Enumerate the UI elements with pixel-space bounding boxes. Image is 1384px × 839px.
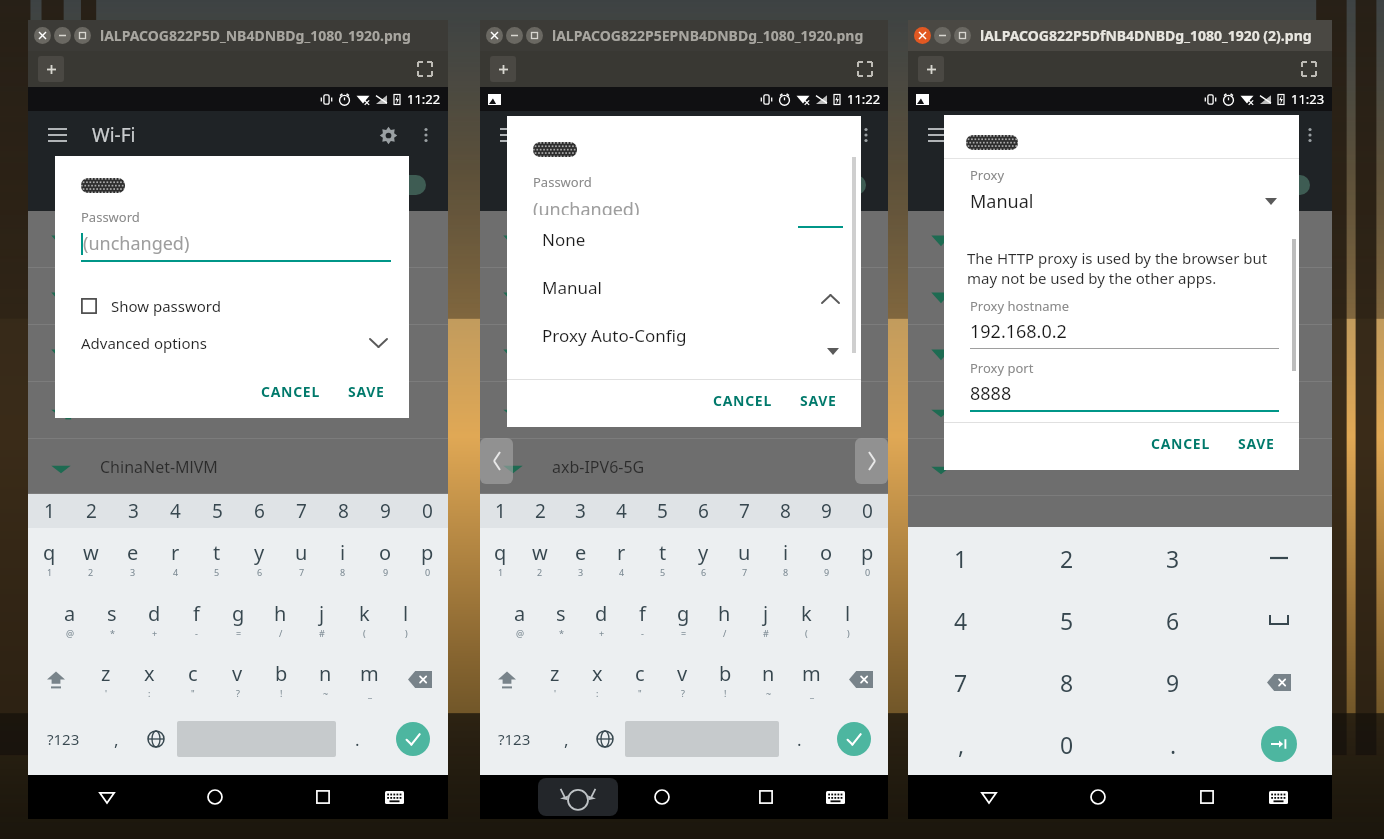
button[interactable]: 5 — [1014, 589, 1120, 651]
button[interactable]: Next — [855, 438, 888, 484]
button[interactable]: 2 — [1014, 527, 1120, 589]
button[interactable]: 1 — [28, 494, 70, 528]
button[interactable]: c — [618, 649, 661, 709]
button[interactable]: n — [303, 649, 347, 709]
button[interactable]: c — [171, 649, 215, 709]
button[interactable]: Keyboard — [377, 780, 411, 814]
button[interactable]: Advanced options — [55, 329, 409, 357]
button[interactable]: 8 — [1014, 651, 1120, 713]
button[interactable]: 1 — [480, 494, 520, 528]
button[interactable]: y — [238, 528, 280, 589]
button[interactable]: 3 — [560, 494, 601, 528]
button[interactable]: Recents — [1190, 780, 1224, 814]
button[interactable]: Rotate screen — [538, 778, 618, 816]
button[interactable] — [1226, 589, 1332, 651]
button[interactable]: z — [84, 649, 127, 709]
button[interactable]: SAVE — [790, 384, 847, 417]
button[interactable]: 6 — [238, 494, 280, 528]
button[interactable]: d — [581, 589, 622, 649]
button[interactable]: s — [540, 589, 581, 649]
button[interactable]: Recents — [749, 780, 783, 814]
button[interactable]: m — [347, 649, 391, 709]
button[interactable]: Manual — [944, 189, 1299, 214]
button[interactable]: k — [786, 589, 827, 649]
button[interactable]: Maximize — [954, 27, 971, 44]
button[interactable]: Home — [645, 780, 679, 814]
button[interactable]: 8 — [322, 494, 364, 528]
button[interactable]: t — [196, 528, 238, 589]
button[interactable] — [392, 175, 426, 195]
button[interactable]: 4 — [601, 494, 642, 528]
button[interactable]: Previous — [480, 438, 513, 484]
button[interactable]: Show password — [55, 292, 409, 320]
button[interactable]: v — [661, 649, 704, 709]
button[interactable]: q — [28, 528, 70, 589]
button[interactable]: o — [806, 528, 847, 589]
button[interactable]: t — [642, 528, 683, 589]
button[interactable] — [28, 211, 448, 268]
button[interactable]: r — [154, 528, 196, 589]
button[interactable]: 2 — [70, 494, 112, 528]
button[interactable]: 5 — [196, 494, 238, 528]
button[interactable]: p — [406, 528, 448, 589]
button[interactable]: Add — [918, 56, 944, 82]
button[interactable] — [480, 382, 888, 439]
button[interactable]: 2 — [520, 494, 560, 528]
button[interactable]: f — [175, 589, 217, 649]
button[interactable]: 4 — [908, 589, 1014, 651]
button[interactable]: Close — [486, 27, 503, 44]
button[interactable]: 9 — [364, 494, 406, 528]
button[interactable]: o — [364, 528, 406, 589]
button[interactable]: CANCEL — [1141, 427, 1220, 460]
button[interactable]: Fullscreen — [412, 56, 438, 82]
button[interactable] — [908, 211, 1332, 268]
button[interactable]: Keyboard — [818, 780, 852, 814]
button[interactable]: Maximize — [74, 27, 91, 44]
button[interactable]: 1 — [908, 527, 1014, 589]
button[interactable]: More options — [408, 117, 444, 153]
button[interactable]: 7 — [908, 651, 1014, 713]
button[interactable]: k — [343, 589, 385, 649]
button[interactable]: g — [663, 589, 704, 649]
button[interactable]: a — [499, 589, 540, 649]
button[interactable]: . — [1120, 713, 1226, 775]
button[interactable]: Close — [34, 27, 51, 44]
button[interactable]: 5 — [642, 494, 683, 528]
button[interactable]: Minimize — [54, 27, 71, 44]
button[interactable]: Home — [1081, 780, 1115, 814]
button[interactable]: ?123 — [28, 709, 98, 769]
button[interactable]: g — [217, 589, 259, 649]
button[interactable] — [908, 382, 1332, 439]
button[interactable]: 9 — [1120, 651, 1226, 713]
button[interactable]: 4 — [154, 494, 196, 528]
button[interactable]: Recents — [306, 780, 340, 814]
button[interactable] — [28, 268, 448, 325]
button[interactable]: 3 — [1120, 527, 1226, 589]
button[interactable]: Menu — [922, 120, 952, 150]
button[interactable]: 0 — [406, 494, 448, 528]
button[interactable] — [832, 175, 866, 195]
button[interactable]: i — [765, 528, 806, 589]
button[interactable]: Back — [541, 780, 575, 814]
button[interactable] — [1276, 175, 1310, 195]
button[interactable]: Fullscreen — [852, 56, 878, 82]
button[interactable]: e — [560, 528, 601, 589]
button[interactable]: j — [301, 589, 343, 649]
button[interactable]: Proxy Auto-Config — [524, 311, 798, 359]
button[interactable]: u — [724, 528, 765, 589]
button[interactable]: Shift — [28, 649, 84, 709]
button[interactable]: 7 — [280, 494, 322, 528]
button[interactable]: Change language — [584, 709, 625, 769]
button[interactable]: None — [507, 340, 861, 363]
button[interactable]: d — [133, 589, 175, 649]
button[interactable]: SAVE — [338, 375, 395, 408]
button[interactable]: Shift — [480, 649, 534, 709]
button[interactable]: More options — [1292, 117, 1328, 153]
button[interactable]: Close — [914, 27, 931, 44]
button[interactable]: Delete — [391, 649, 448, 709]
button[interactable]: Fullscreen — [1296, 56, 1322, 82]
button[interactable]: Menu — [42, 120, 72, 150]
button[interactable]: Minimize — [934, 27, 951, 44]
button[interactable]: , — [548, 709, 584, 769]
